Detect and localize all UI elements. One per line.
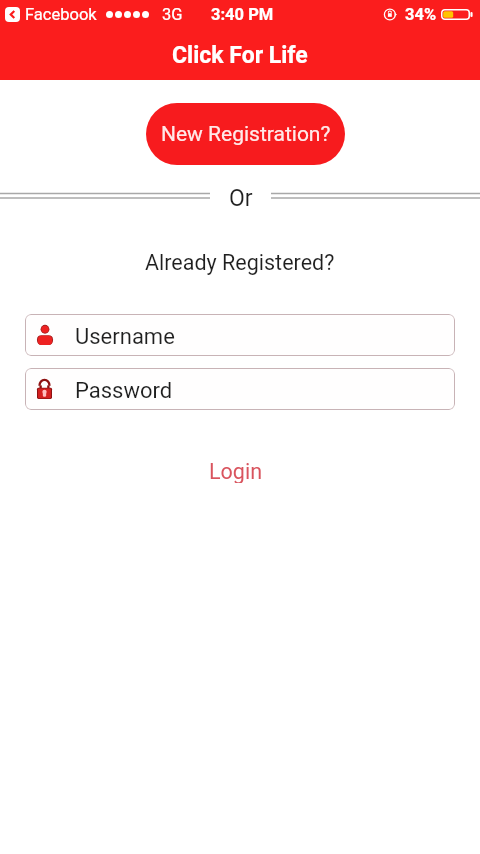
button[interactable]: Back to Facebook — [5, 7, 20, 22]
staticText: 3G — [162, 5, 183, 24]
button[interactable]: New Registration? — [146, 103, 345, 165]
button[interactable]: Password — [25, 368, 455, 410]
button[interactable]: User — [25, 314, 455, 356]
staticText: Login — [209, 459, 263, 483]
other: User — [37, 324, 53, 345]
staticText: Username — [75, 324, 175, 350]
staticText: Facebook — [25, 5, 97, 24]
staticText: Or — [229, 185, 253, 212]
button[interactable]: Login — [183, 451, 289, 491]
staticText: New Registration? — [161, 122, 331, 147]
staticText: Password — [75, 378, 173, 404]
other: Password — [37, 379, 52, 399]
staticText: Already Registered? — [145, 250, 335, 275]
staticText: 3:40 PM — [211, 5, 274, 24]
staticText: 34% — [405, 5, 437, 24]
staticText: Click For Life — [172, 42, 308, 69]
